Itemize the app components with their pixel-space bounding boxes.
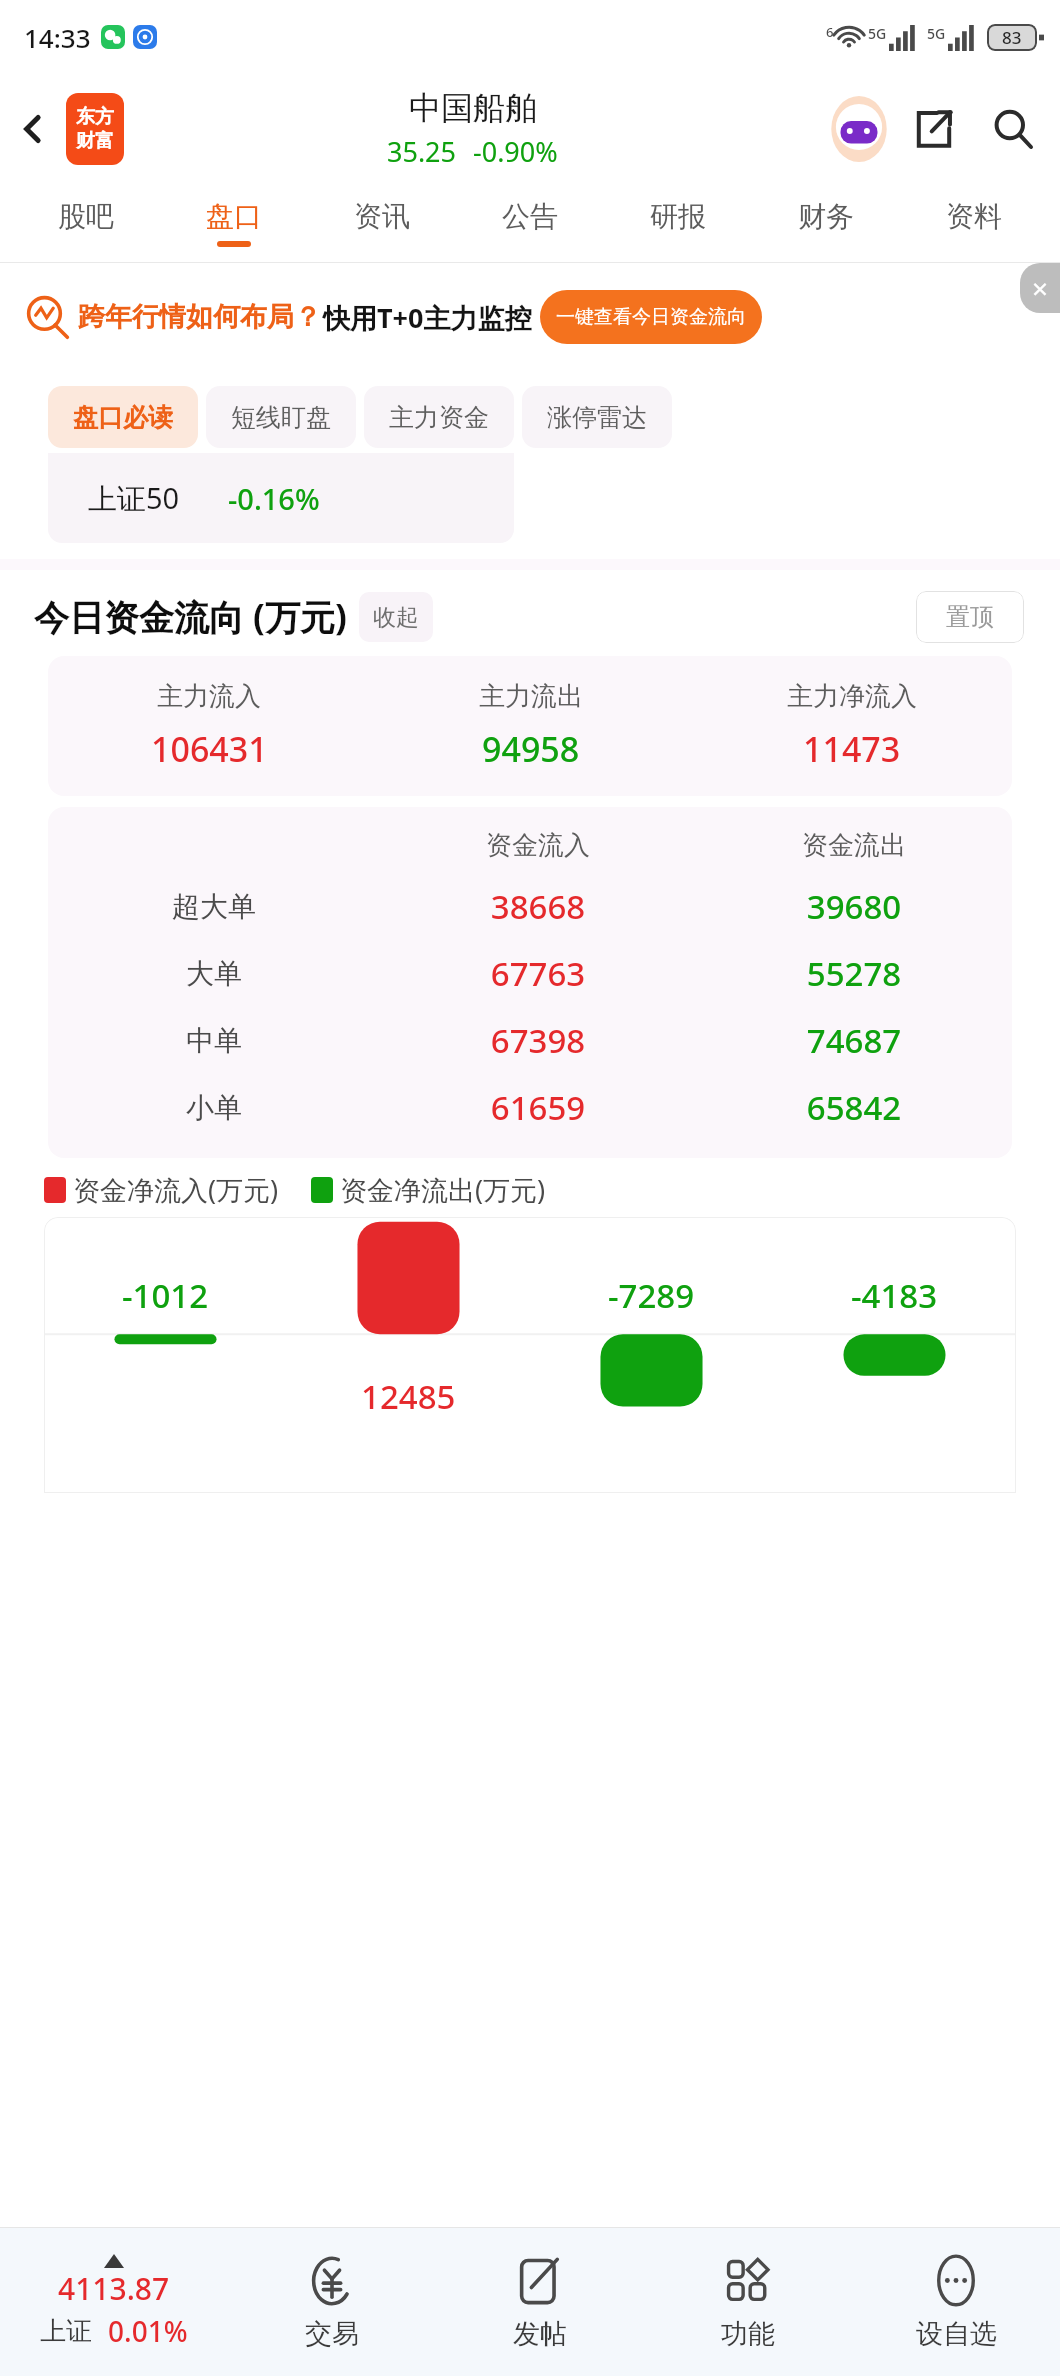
staticText: 资金净流出(万元) [340,1171,546,1208]
staticText: 67398 [380,1018,696,1063]
staticText: 超大单 [48,889,380,924]
staticText: 94958 [482,726,580,772]
staticText: 涨停雷达 [547,402,647,433]
staticText: 55278 [696,951,1012,996]
staticText: 38668 [380,884,696,929]
button[interactable]: 研报 [604,184,752,262]
staticText: 资讯 [354,199,410,234]
staticText: 今日资金流向 (万元) [34,593,347,641]
staticText: 设自选 [916,2317,997,2351]
button[interactable]: 一键查看今日资金流向 [540,290,762,344]
staticText: -4183 [851,1273,938,1318]
button[interactable]: Share [896,91,972,167]
staticText: 财务 [798,199,854,234]
staticText: 公告 [502,199,558,234]
staticText: 上证50 [88,478,180,518]
staticText: 67763 [380,951,696,996]
staticText: 大单 [48,956,380,991]
staticText: 主力资金 [389,402,489,433]
staticText: 上证 [40,2315,92,2348]
staticText: 主力流出 [479,680,583,713]
staticText: 资料 [946,199,1002,234]
staticText: 6 [826,23,834,41]
button[interactable]: 资讯 [308,184,456,262]
button[interactable]: 资料 [900,184,1048,262]
button[interactable]: 交易 [228,2228,436,2376]
staticText: 5G [927,24,946,43]
staticText: 一键查看今日资金流向 [556,305,746,329]
button[interactable]: 中国船舶 [387,88,558,170]
staticText: × [1032,269,1049,307]
button[interactable]: 收起 [359,592,433,642]
staticText: 股吧 [58,199,114,234]
staticText: -0.16% [228,479,320,518]
staticText: 106431 [151,726,268,772]
staticText: 发帖 [513,2317,567,2351]
button[interactable]: 4113.87 [0,2254,228,2350]
staticText: 35.25 [387,133,457,170]
button[interactable]: 涨停雷达 [522,386,672,448]
staticText: 东方 [76,105,114,129]
button[interactable]: 设自选 [852,2228,1060,2376]
button[interactable]: 置顶 [916,591,1024,643]
staticText: 置顶 [946,602,994,632]
staticText: -0.90% [473,133,558,170]
staticText: 小单 [48,1090,380,1125]
staticText: 4113.87 [58,2268,170,2309]
staticText: 研报 [650,199,706,234]
button[interactable]: 短线盯盘 [206,386,356,448]
staticText: 主力流入 [157,680,261,713]
staticText: 12485 [361,1374,456,1419]
staticText: 短线盯盘 [231,402,331,433]
button[interactable]: AI assistant [822,92,896,166]
staticText: 主力净流入 [787,680,917,713]
staticText: 快用T+0主力监控 [323,299,532,336]
staticText: 39680 [696,884,1012,929]
button[interactable]: 股吧 [12,184,160,262]
button[interactable]: 发帖 [436,2228,644,2376]
button[interactable]: Search [972,88,1054,170]
staticText: 资金流出 [696,829,1012,862]
staticText: 74687 [696,1018,1012,1063]
staticText: 跨年行情如何布局？ [78,300,321,334]
staticText: -7289 [608,1273,695,1318]
staticText: 功能 [721,2317,775,2351]
staticText: 11473 [803,726,901,772]
staticText: 财富 [76,129,114,153]
staticText: 61659 [380,1085,696,1130]
staticText: 83 [1002,26,1022,49]
button[interactable]: 财务 [752,184,900,262]
staticText: 中国船舶 [409,88,537,128]
staticText: 14:33 [24,20,91,55]
button[interactable]: 盘口必读 [48,386,198,448]
staticText: -1012 [122,1273,209,1318]
staticText: 65842 [696,1085,1012,1130]
button[interactable]: 公告 [456,184,604,262]
staticText: 中单 [48,1023,380,1058]
staticText: 盘口 [206,199,262,234]
staticText: 5G [868,24,887,43]
button[interactable]: 盘口 [160,184,308,262]
staticText: 0.01% [108,2312,188,2350]
staticText: 盘口必读 [73,402,173,433]
button[interactable]: 东方 [66,93,124,165]
button[interactable]: 主力资金 [364,386,514,448]
button[interactable]: Close ad [1020,263,1060,313]
button[interactable]: 上证50 [48,453,514,543]
staticText: 资金净流入(万元) [73,1171,279,1208]
staticText: 资金流入 [380,829,696,862]
staticText: 交易 [305,2317,359,2351]
button[interactable]: 功能 [644,2228,852,2376]
staticText: 收起 [373,603,419,632]
button[interactable]: Back [0,74,66,184]
